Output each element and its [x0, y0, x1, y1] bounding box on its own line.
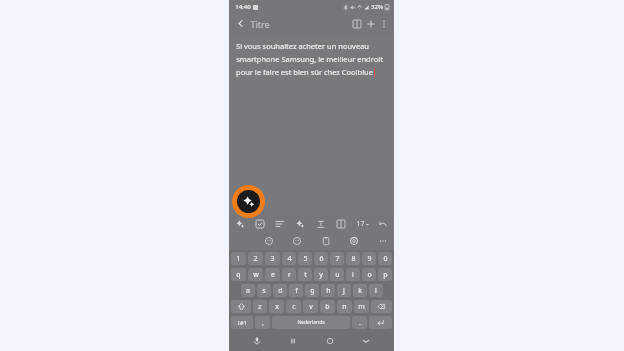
staticText: 8	[351, 254, 356, 264]
button[interactable]: More options	[378, 18, 390, 30]
button[interactable]: v	[303, 300, 318, 313]
staticText: .	[359, 318, 361, 328]
button[interactable]: e	[265, 268, 280, 281]
button[interactable]: Stickers	[289, 233, 305, 249]
button[interactable]: Recents	[285, 333, 301, 349]
button[interactable]: View mode	[350, 17, 364, 31]
button[interactable]: z	[253, 300, 267, 313]
staticText: n	[342, 302, 347, 312]
staticText: j	[343, 286, 345, 296]
button[interactable]: More	[375, 233, 391, 249]
button[interactable]: s	[257, 284, 271, 297]
button[interactable]: h	[321, 284, 335, 297]
staticText: z	[258, 302, 262, 312]
staticText: q	[236, 270, 241, 280]
button[interactable]: m	[354, 300, 369, 313]
button[interactable]: t	[298, 268, 312, 281]
button[interactable]: u	[330, 268, 344, 281]
staticText: 7	[335, 254, 340, 264]
button[interactable]: 3	[265, 252, 280, 265]
button[interactable]: i	[346, 268, 360, 281]
staticText: Si vous souhaitez acheter un nouveau	[236, 41, 369, 51]
button[interactable]: b	[320, 300, 335, 313]
button[interactable]: Voice input	[249, 333, 265, 349]
staticText: 32%	[371, 3, 383, 11]
button[interactable]: Checklist	[252, 216, 268, 232]
button[interactable]: Back	[234, 17, 247, 30]
button[interactable]: 4	[282, 252, 296, 265]
button[interactable]: a	[241, 284, 255, 297]
button[interactable]: n	[337, 300, 352, 313]
staticText: i	[352, 270, 354, 280]
button[interactable]: 9	[362, 252, 376, 265]
staticText: s	[262, 286, 266, 296]
button[interactable]: AI assist	[243, 196, 254, 207]
button[interactable]: Settings	[346, 233, 362, 249]
staticText: t	[304, 270, 307, 280]
staticText: 14:40	[235, 3, 251, 11]
button[interactable]: 2	[248, 252, 263, 265]
button[interactable]: 7	[330, 252, 344, 265]
button[interactable]: l	[369, 284, 383, 297]
button[interactable]: Clipboard	[318, 233, 334, 249]
staticText: m	[358, 302, 365, 312]
button[interactable]: Emoji	[261, 233, 277, 249]
staticText: 3	[270, 254, 275, 264]
button[interactable]: p	[378, 268, 392, 281]
staticText: 0	[383, 254, 388, 264]
button[interactable]: Assist	[232, 216, 248, 232]
button[interactable]: .	[352, 316, 367, 329]
button[interactable]: Undo	[375, 216, 391, 232]
button[interactable]: Text style	[313, 216, 329, 232]
staticText: 5	[303, 254, 308, 264]
staticText: Nederlands	[297, 319, 325, 326]
button[interactable]: 0	[378, 252, 392, 265]
staticText: 6	[319, 254, 324, 264]
button[interactable]: q	[231, 268, 246, 281]
button[interactable]: c	[286, 300, 301, 313]
staticText: d	[278, 286, 283, 296]
staticText: Titre	[250, 18, 270, 30]
button[interactable]: Table	[333, 216, 349, 232]
button[interactable]: r	[282, 268, 296, 281]
staticText: k	[358, 286, 362, 296]
button[interactable]: 1	[231, 252, 246, 265]
button[interactable]: ,	[255, 316, 270, 329]
staticText: h	[326, 286, 331, 296]
button[interactable]: d	[273, 284, 287, 297]
button[interactable]: Format	[292, 216, 308, 232]
staticText: x	[275, 302, 279, 312]
button[interactable]: 8	[346, 252, 360, 265]
staticText: e	[271, 270, 275, 280]
button[interactable]: Home	[322, 333, 338, 349]
staticText: a	[246, 286, 250, 296]
staticText: l	[375, 286, 377, 296]
staticText: w	[253, 270, 259, 280]
button[interactable]: Hide keyboard	[358, 333, 374, 349]
button[interactable]: j	[337, 284, 351, 297]
button[interactable]: Shift	[231, 300, 251, 313]
button[interactable]: o	[362, 268, 376, 281]
staticText: p	[383, 270, 388, 280]
button[interactable]: !#1	[231, 316, 253, 329]
button[interactable]: List	[272, 216, 288, 232]
button[interactable]: 17	[353, 216, 371, 232]
button[interactable]: Enter	[369, 316, 392, 329]
button[interactable]: k	[353, 284, 367, 297]
staticText: pour le faire est bien sûr chez Coolblue	[236, 67, 373, 77]
button[interactable]: Backspace	[371, 300, 392, 313]
staticText: 17	[356, 219, 365, 229]
button[interactable]: w	[248, 268, 263, 281]
button[interactable]: 5	[298, 252, 312, 265]
button[interactable]: x	[269, 300, 284, 313]
button[interactable]: 6	[314, 252, 328, 265]
staticText: y	[319, 270, 323, 280]
staticText: 1	[236, 254, 241, 264]
button[interactable]: y	[314, 268, 328, 281]
button[interactable]: f	[289, 284, 303, 297]
staticText: 9	[367, 254, 372, 264]
button[interactable]: Add	[364, 17, 378, 31]
button[interactable]: g	[305, 284, 319, 297]
button[interactable]: Nederlands	[272, 316, 350, 329]
staticText: f	[295, 286, 298, 296]
